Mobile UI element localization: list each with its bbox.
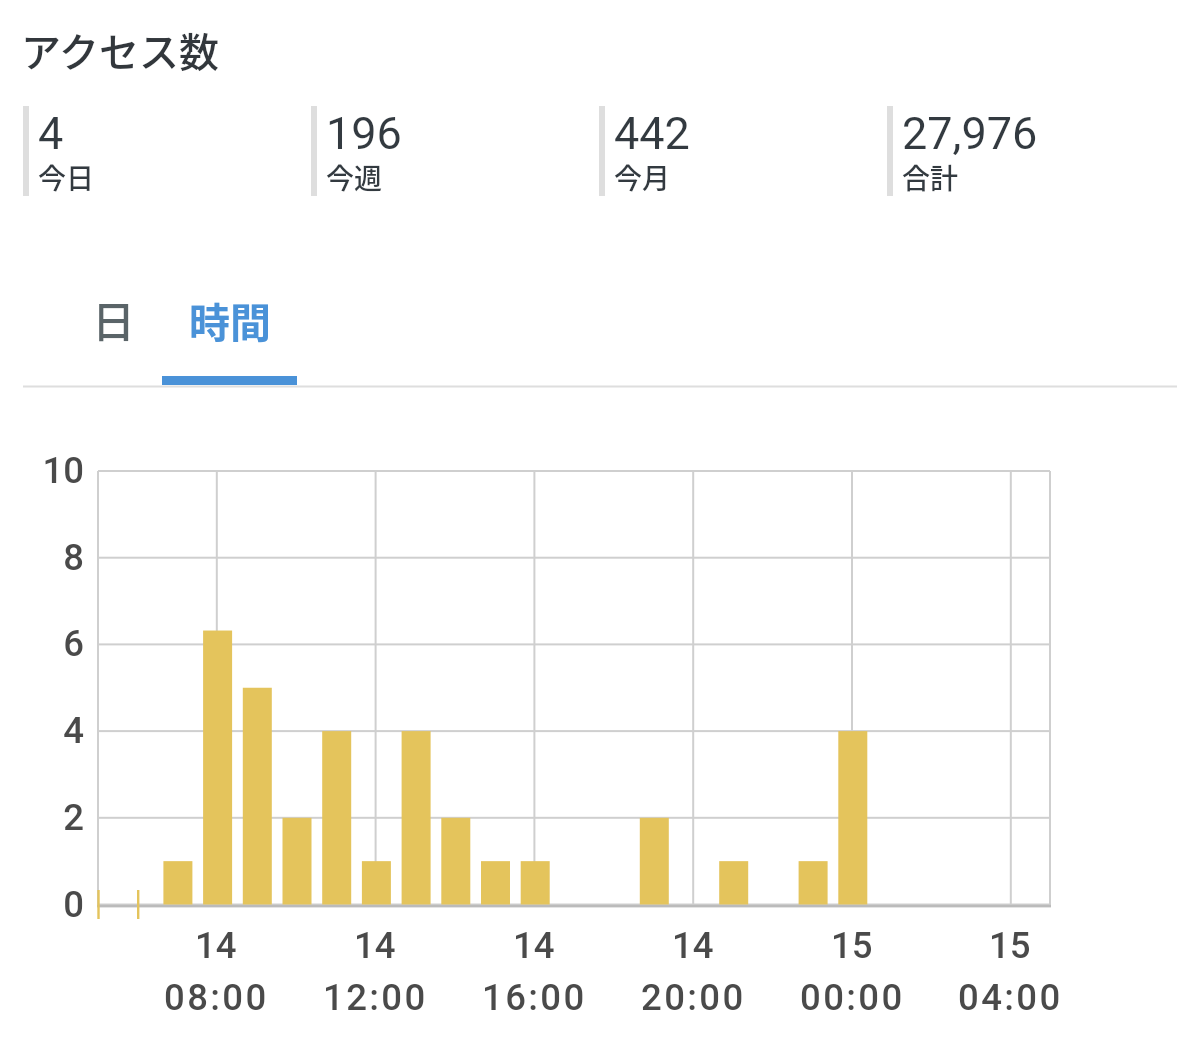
staticText: 27,976 bbox=[902, 107, 1038, 160]
staticText: 14 bbox=[513, 924, 555, 967]
staticText: 時間 bbox=[189, 290, 271, 349]
button[interactable]: 196 bbox=[311, 106, 599, 196]
staticText: 今月 bbox=[614, 157, 671, 193]
button[interactable]: 日 bbox=[46, 288, 180, 384]
staticText: 15 bbox=[989, 924, 1031, 967]
staticText: 442 bbox=[614, 107, 690, 160]
staticText: 16:00 bbox=[482, 976, 587, 1019]
staticText: 合計 bbox=[902, 157, 959, 193]
staticText: 今週 bbox=[326, 157, 383, 193]
button[interactable]: 27,976 bbox=[887, 106, 1175, 196]
staticText: 00:00 bbox=[800, 976, 905, 1019]
button[interactable]: 時間 bbox=[162, 290, 297, 384]
staticText: 196 bbox=[326, 107, 402, 160]
staticText: 0 bbox=[23, 883, 84, 926]
staticText: 14 bbox=[672, 924, 714, 967]
staticText: 8 bbox=[23, 536, 84, 579]
button[interactable]: 442 bbox=[599, 106, 887, 196]
staticText: 20:00 bbox=[641, 976, 746, 1019]
staticText: 14 bbox=[195, 924, 237, 967]
staticText: 6 bbox=[23, 622, 84, 665]
staticText: 08:00 bbox=[164, 976, 269, 1019]
staticText: 10 bbox=[23, 449, 84, 492]
button[interactable]: 4 bbox=[23, 106, 311, 196]
staticText: アクセス数 bbox=[21, 21, 219, 79]
staticText: 14 bbox=[354, 924, 396, 967]
staticText: 4 bbox=[23, 709, 84, 752]
staticText: 4 bbox=[38, 107, 64, 160]
staticText: 12:00 bbox=[323, 976, 428, 1019]
staticText: 15 bbox=[831, 924, 873, 967]
staticText: 2 bbox=[23, 796, 84, 839]
staticText: 04:00 bbox=[958, 976, 1063, 1019]
staticText: 今日 bbox=[38, 157, 95, 193]
staticText: 日 bbox=[92, 288, 135, 350]
